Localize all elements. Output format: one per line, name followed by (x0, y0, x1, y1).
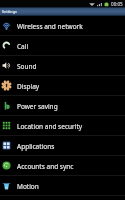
staticText: Location and security (17, 122, 83, 131)
button[interactable]: Wireless and network (0, 16, 125, 36)
staticText: 00:05 (111, 1, 123, 7)
staticText: Display (17, 82, 40, 91)
staticText: Call (17, 42, 29, 51)
button[interactable]: Applications (0, 136, 125, 156)
button[interactable]: Location and security (0, 116, 125, 136)
staticText: Sound (17, 62, 37, 71)
staticText: Applications (17, 142, 55, 151)
button[interactable]: Call (0, 36, 125, 56)
staticText: Power saving (17, 102, 58, 111)
staticText: Motion (17, 182, 39, 191)
staticText: Accounts and sync (17, 162, 74, 171)
button[interactable]: Display (0, 76, 125, 96)
button[interactable]: Sound (0, 56, 125, 76)
button[interactable]: Accounts and sync (0, 156, 125, 176)
button[interactable]: Power saving (0, 96, 125, 116)
button[interactable]: Motion (0, 176, 125, 196)
staticText: Wireless and network (17, 22, 83, 31)
staticText: Settings (2, 9, 17, 14)
